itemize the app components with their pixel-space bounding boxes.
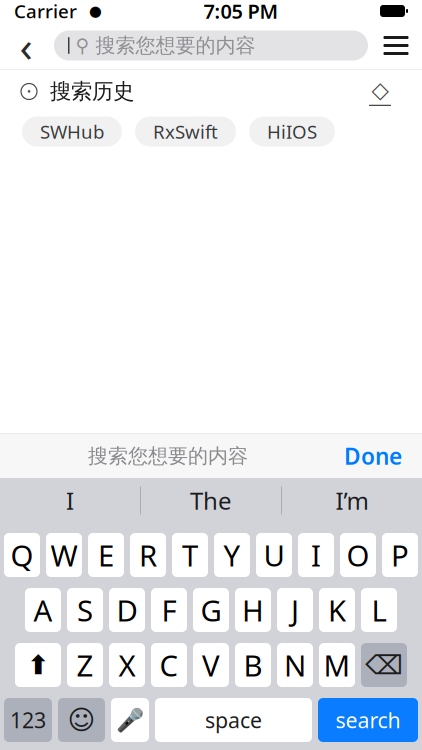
button[interactable]: Clear search history	[358, 73, 402, 109]
staticText: P	[391, 535, 409, 574]
button[interactable]: Z	[67, 643, 103, 687]
button[interactable]: W	[46, 533, 82, 577]
staticText: J	[291, 590, 299, 629]
staticText: ⚲	[75, 35, 89, 56]
button[interactable]: L	[361, 588, 397, 632]
staticText: RxSwift	[153, 119, 218, 144]
staticText: The	[190, 485, 232, 516]
button[interactable]: Back	[4, 23, 48, 67]
button[interactable]: D	[109, 588, 145, 632]
staticText: Z	[76, 645, 93, 684]
staticText: ☺	[67, 705, 95, 735]
button[interactable]: A	[25, 588, 61, 632]
staticText: W	[50, 535, 77, 574]
staticText: H	[242, 590, 264, 629]
button[interactable]: search	[318, 698, 418, 742]
staticText: 搜索您想要的内容	[95, 33, 255, 58]
button[interactable]: F	[151, 588, 187, 632]
button[interactable]: Done	[330, 434, 416, 478]
staticText: •	[27, 84, 31, 99]
staticText: C	[159, 645, 178, 684]
staticText: Done	[344, 441, 402, 471]
staticText: N	[284, 645, 306, 684]
button[interactable]: RxSwift	[135, 116, 236, 146]
staticText: I	[66, 485, 74, 516]
staticText: 搜索您想要的内容	[88, 444, 248, 468]
button[interactable]: V	[193, 643, 229, 687]
staticText: SWHub	[40, 119, 104, 144]
button[interactable]: O	[340, 533, 376, 577]
button[interactable]: HiIOS	[249, 116, 335, 146]
button[interactable]: C	[151, 643, 187, 687]
staticText: L	[371, 590, 386, 629]
staticText: M	[323, 645, 350, 684]
button[interactable]: G	[193, 588, 229, 632]
staticText: B	[243, 645, 262, 684]
staticText: ◇	[371, 77, 388, 103]
staticText: F	[161, 590, 176, 629]
staticText: G	[200, 590, 221, 629]
staticText: 🎤	[116, 707, 144, 733]
button[interactable]: U	[256, 533, 292, 577]
staticText: I’m	[335, 485, 368, 516]
staticText: O	[346, 535, 369, 574]
staticText: Q	[10, 535, 33, 574]
button[interactable]: B	[235, 643, 271, 687]
button[interactable]: T	[172, 533, 208, 577]
staticText: space	[205, 706, 262, 734]
button[interactable]: M	[319, 643, 355, 687]
staticText: Y	[223, 535, 240, 574]
staticText: K	[328, 590, 346, 629]
button[interactable]: The	[141, 478, 281, 523]
button[interactable]: K	[319, 588, 355, 632]
staticText: ⬆	[27, 650, 49, 680]
button[interactable]: I	[298, 533, 334, 577]
button[interactable]: J	[277, 588, 313, 632]
staticText: D	[116, 590, 137, 629]
button[interactable]: Y	[214, 533, 250, 577]
staticText: 123	[10, 706, 46, 734]
staticText: 7:05 PM	[203, 0, 278, 24]
staticText: ⌫	[365, 650, 403, 680]
button[interactable]: X	[109, 643, 145, 687]
staticText: E	[98, 535, 114, 574]
staticText: Carrier	[14, 0, 77, 23]
staticText: HiIOS	[267, 119, 317, 144]
staticText: T	[182, 535, 198, 574]
button[interactable]: I	[0, 478, 140, 523]
button[interactable]	[54, 30, 368, 60]
button[interactable]: space	[155, 698, 312, 742]
button[interactable]: N	[277, 643, 313, 687]
staticText: S	[77, 590, 93, 629]
button[interactable]: SWHub	[22, 116, 122, 146]
staticText: ●	[89, 3, 102, 19]
button[interactable]: Q	[4, 533, 40, 577]
button[interactable]: R	[130, 533, 166, 577]
button[interactable]: H	[235, 588, 271, 632]
staticText: X	[118, 645, 135, 684]
staticText: 搜索历史	[50, 78, 134, 105]
button[interactable]: Emoji	[58, 698, 105, 742]
button[interactable]: I’m	[282, 478, 422, 523]
staticText: V	[202, 645, 220, 684]
button[interactable]: Menu	[374, 23, 418, 67]
staticText: I	[311, 535, 321, 574]
button[interactable]: 123	[4, 698, 52, 742]
staticText: R	[139, 535, 157, 574]
staticText: A	[33, 590, 52, 629]
button[interactable]: Dictate	[111, 698, 149, 742]
button[interactable]: Shift	[15, 643, 61, 687]
button[interactable]: E	[88, 533, 124, 577]
staticText: search	[335, 706, 400, 734]
button[interactable]: P	[382, 533, 418, 577]
staticText: U	[263, 535, 284, 574]
button[interactable]: Delete	[361, 643, 407, 687]
staticText: ‹	[19, 17, 32, 74]
button[interactable]: S	[67, 588, 103, 632]
